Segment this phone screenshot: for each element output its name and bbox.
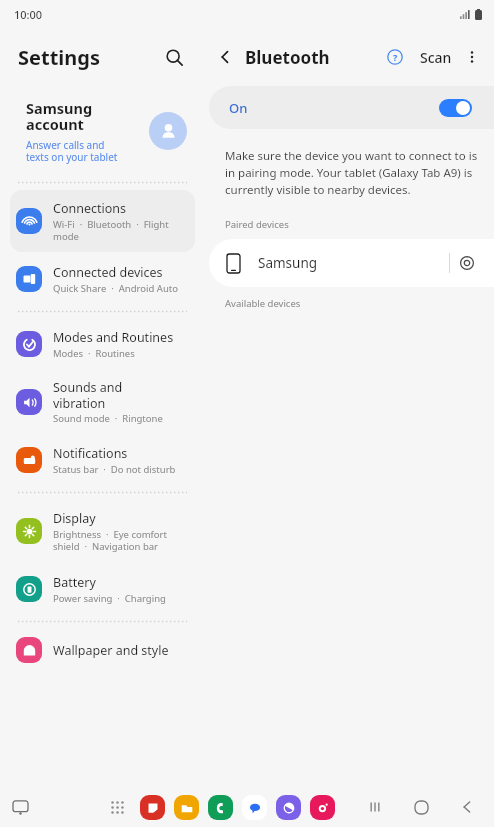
staticText: On <box>229 99 248 117</box>
button[interactable]: camera <box>310 795 335 820</box>
button[interactable]: On <box>209 86 494 129</box>
button[interactable]: Sounds and vibration <box>10 371 195 433</box>
button[interactable]: Scan <box>414 43 458 72</box>
staticText: Settings <box>18 44 100 71</box>
staticText: Quick Share · Android Auto <box>53 282 178 295</box>
button[interactable]: Samsung account <box>0 86 205 176</box>
button[interactable]: Device settings <box>450 246 484 280</box>
button[interactable]: Help <box>380 42 410 72</box>
button[interactable]: Display <box>10 500 195 562</box>
staticText: Connections <box>53 200 126 217</box>
staticText: Status bar · Do not disturb <box>53 463 176 476</box>
staticText: Wi-Fi · Bluetooth · Flight mode <box>53 218 169 243</box>
staticText: ? <box>393 51 398 63</box>
button[interactable]: folder <box>174 795 199 820</box>
button[interactable]: Search <box>157 40 191 74</box>
staticText: Battery <box>53 574 96 591</box>
button[interactable]: note <box>140 795 165 820</box>
button[interactable]: internet <box>276 795 301 820</box>
staticText: Power saving · Charging <box>53 592 166 605</box>
staticText: 10:00 <box>14 7 43 22</box>
staticText: Make sure the device you want to connect… <box>225 148 480 198</box>
button[interactable]: Back <box>450 790 484 824</box>
button[interactable]: Notifications <box>10 435 195 485</box>
staticText: Bluetooth <box>245 46 330 69</box>
button[interactable]: Modes and Routines <box>10 319 195 369</box>
button[interactable]: Connections <box>10 190 195 252</box>
staticText: Wallpaper and style <box>53 642 169 659</box>
button[interactable]: Home <box>404 790 438 824</box>
staticText: Connected devices <box>53 264 163 281</box>
staticText: Modes and Routines <box>53 329 174 346</box>
button[interactable]: messages <box>242 795 267 820</box>
button[interactable]: Battery <box>10 564 195 614</box>
staticText: Available devices <box>225 297 301 310</box>
button[interactable]: Connected devices <box>10 254 195 304</box>
button[interactable]: phone <box>208 795 233 820</box>
staticText: Samsung account <box>26 98 93 135</box>
button[interactable]: Recent apps <box>6 793 34 821</box>
button[interactable]: Apps <box>103 793 131 821</box>
staticText: Paired devices <box>225 218 289 231</box>
staticText: Modes · Routines <box>53 347 135 360</box>
button[interactable]: Back <box>209 41 241 73</box>
staticText: Samsung <box>258 254 318 272</box>
button[interactable]: Recents <box>358 790 392 824</box>
staticText: Scan <box>420 48 452 67</box>
button[interactable]: Samsung <box>209 239 494 287</box>
staticText: Brightness · Eye comfort shield · Naviga… <box>53 528 167 553</box>
staticText: Notifications <box>53 445 128 462</box>
staticText: Display <box>53 510 96 527</box>
staticText: Sound mode · Ringtone <box>53 412 163 425</box>
staticText: Sounds and vibration <box>53 379 123 411</box>
staticText: Answer calls and texts on your tablet <box>26 138 118 164</box>
button[interactable]: More options <box>458 43 486 71</box>
button[interactable]: Wallpaper and style <box>10 629 195 671</box>
